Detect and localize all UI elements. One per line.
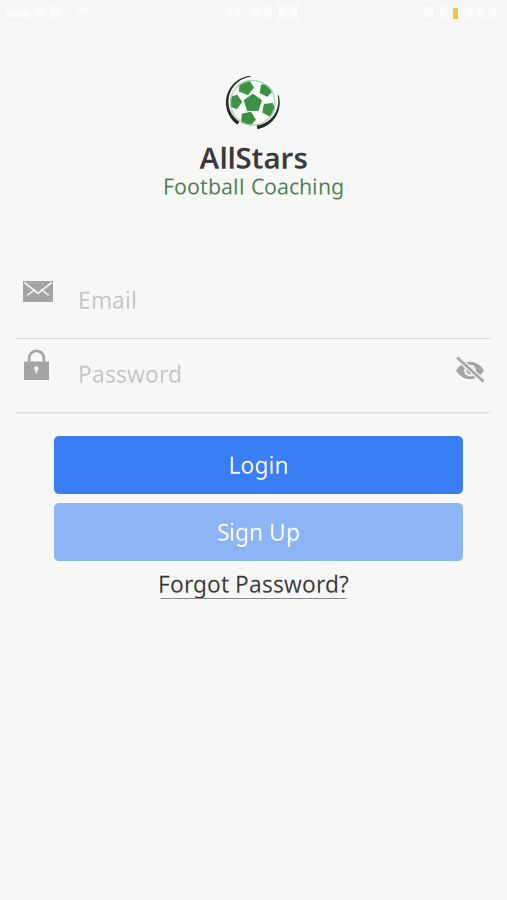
staticText: Football Coaching <box>163 172 344 200</box>
staticText: Password <box>78 359 182 389</box>
button[interactable]: Sign Up <box>54 503 463 561</box>
button[interactable]: Forgot Password? <box>153 569 353 605</box>
staticText: Forgot Password? <box>158 569 349 599</box>
staticText: AllStars <box>199 138 307 177</box>
staticText: Login <box>228 450 288 480</box>
button[interactable]: Show password <box>455 350 485 376</box>
staticText: Sign Up <box>217 517 300 547</box>
staticText: Email <box>78 285 137 315</box>
button[interactable]: Login <box>54 436 463 494</box>
